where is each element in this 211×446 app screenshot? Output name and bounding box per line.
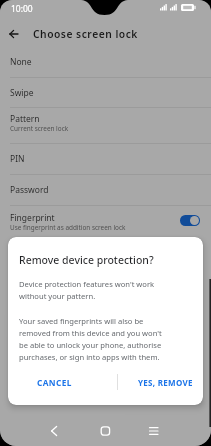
button[interactable]: [10, 30, 18, 38]
button[interactable]: Fingerprint Use fingerprint as addition …: [0, 206, 211, 241]
staticText: Swipe: [10, 87, 211, 99]
staticText: Choose screen lock: [33, 27, 138, 41]
button[interactable]: [23, 420, 63, 446]
staticText: YES, REMOVE: [138, 377, 193, 388]
button[interactable]: Password: [0, 175, 211, 205]
button[interactable]: [180, 215, 200, 226]
button[interactable]: Swipe: [0, 78, 211, 107]
staticText: Pattern Current screen lock: [10, 113, 211, 133]
button[interactable]: CANCEL: [8, 367, 100, 397]
staticText: Remove device protection?: [19, 253, 154, 267]
button[interactable]: None: [0, 47, 211, 77]
staticText: 10:00: [11, 3, 33, 15]
staticText: Device protection features won't work wi…: [19, 279, 155, 302]
staticText: None: [10, 56, 211, 68]
button[interactable]: [148, 420, 188, 446]
staticText: Your saved fingerprints will also be rem…: [19, 316, 162, 363]
button[interactable]: PIN: [0, 144, 211, 174]
button[interactable]: [86, 420, 126, 446]
staticText: CANCEL: [37, 377, 72, 388]
button[interactable]: YES, REMOVE: [128, 367, 203, 397]
staticText: Password: [10, 184, 211, 196]
button[interactable]: Pattern Current screen lock: [0, 108, 211, 143]
staticText: PIN: [10, 153, 211, 165]
staticText: Fingerprint Use fingerprint as addition …: [10, 212, 180, 232]
